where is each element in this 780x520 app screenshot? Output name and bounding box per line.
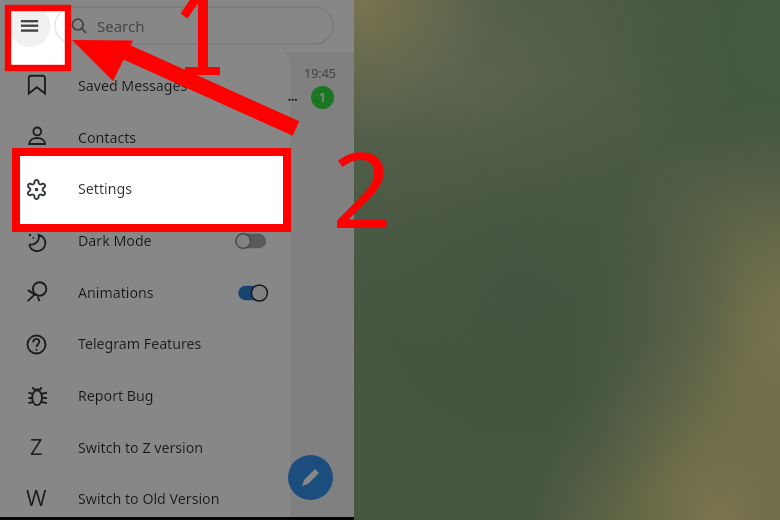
staticText: Search	[97, 16, 145, 36]
button[interactable]: Dark Mode	[0, 215, 290, 267]
button[interactable]: W	[0, 473, 290, 520]
button[interactable]: Z	[0, 422, 290, 474]
staticText: Report Bug	[78, 386, 154, 405]
staticText: 19:45	[304, 65, 336, 82]
staticText: Settings	[78, 179, 132, 198]
button[interactable]: Animations	[0, 267, 290, 319]
staticText: 1	[319, 89, 327, 106]
staticText: 2	[332, 116, 393, 259]
button[interactable]: Settings	[0, 163, 290, 215]
staticText: Switch to Z version	[78, 438, 204, 457]
staticText: Saved Messages	[78, 76, 188, 95]
staticText: Animations	[78, 283, 154, 302]
staticText: Telegram Features	[78, 334, 202, 353]
button[interactable]: Open navigation menu	[8, 5, 52, 49]
button[interactable]: New message	[288, 455, 333, 500]
button[interactable]: Saved Messages	[0, 60, 290, 112]
button[interactable]: Report Bug	[0, 370, 290, 422]
staticText: Switch to Old Version	[78, 489, 220, 508]
staticText: Z	[30, 431, 43, 461]
button[interactable]: Telegram Features	[0, 318, 290, 370]
button[interactable]: Search	[55, 7, 333, 44]
staticText: W	[26, 482, 47, 512]
staticText: Dark Mode	[78, 231, 152, 250]
staticText: Contacts	[78, 128, 137, 147]
button[interactable]: Contacts	[0, 112, 290, 164]
